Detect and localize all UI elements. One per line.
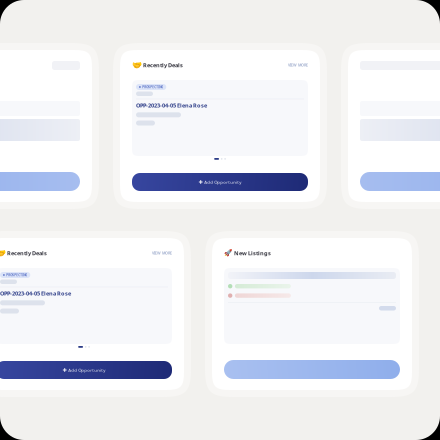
staticText: PROSPECTING [6,273,27,277]
button[interactable]: View new listings [224,360,400,379]
staticText: PROSPECTING [142,85,163,89]
staticText: VIEW MORE [288,62,308,67]
staticText: Recently Deals [143,61,183,69]
staticText: VIEW MORE [152,250,172,255]
button[interactable]: Add Opportunity [0,361,172,379]
button[interactable]: VIEW MORE [152,250,172,255]
button[interactable]: VIEW MORE [288,62,308,67]
staticText: 🚀 [224,249,232,257]
staticText: Add Opportunity [204,179,241,185]
button[interactable]: Add Opportunity [132,173,308,191]
staticText: OPP-2023-04-05 Elena Rose [0,290,71,297]
staticText: OPP-2023-04-05 Elena Rose [136,102,207,109]
staticText: Add Opportunity [68,367,105,373]
staticText: Recently Deals [7,249,47,257]
staticText: New Listings [234,249,271,257]
staticText: 🤝 [132,60,142,69]
staticText: 🤝 [0,248,6,257]
